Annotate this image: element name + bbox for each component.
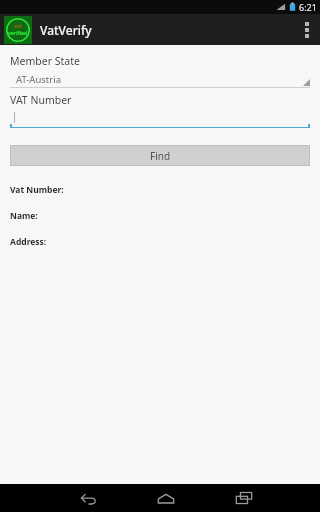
button[interactable]: Find xyxy=(11,146,309,165)
staticText: Find xyxy=(150,149,171,163)
staticText: 6:21 xyxy=(299,1,317,13)
staticText: VatVerify xyxy=(40,22,92,38)
staticText: Member State xyxy=(10,54,80,68)
staticText: Address: xyxy=(10,236,47,248)
button[interactable]: Home xyxy=(144,484,188,512)
button[interactable]: Back xyxy=(66,484,110,512)
button[interactable]: More options xyxy=(294,14,320,45)
staticText: verified xyxy=(8,30,28,37)
button[interactable]: AT-Austria xyxy=(10,72,310,88)
staticText: Name: xyxy=(10,210,38,222)
staticText: VAT Number xyxy=(10,93,72,107)
button[interactable]: Recent apps xyxy=(222,484,266,512)
staticText: vat xyxy=(14,23,23,30)
button[interactable] xyxy=(10,110,310,128)
staticText: AT-Austria xyxy=(16,73,61,86)
staticText: Vat Number: xyxy=(10,184,64,196)
